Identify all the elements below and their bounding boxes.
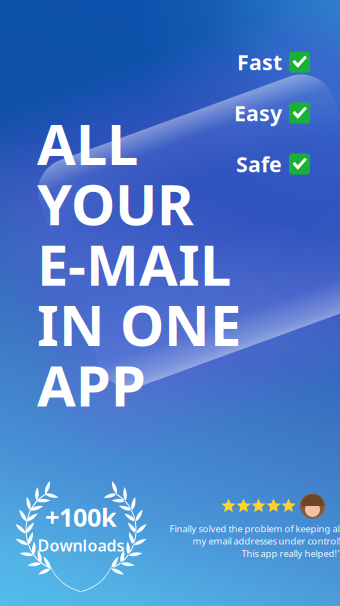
staticText: IN ONE	[37, 287, 241, 362]
staticText: APP	[37, 347, 146, 422]
staticText: E-MAIL	[37, 227, 231, 301]
staticText: Downloads	[37, 535, 124, 556]
staticText: +100k	[45, 500, 117, 534]
staticText: YOUR	[37, 166, 194, 241]
button[interactable]: Fast	[214, 36, 310, 87]
staticText: Safe	[236, 150, 282, 178]
button[interactable]: Safe	[214, 138, 310, 189]
staticText: Easy	[234, 99, 282, 127]
staticText: Finally solved the problem of keeping al…	[169, 522, 340, 560]
staticText: Fast	[237, 48, 282, 76]
staticText: ALL	[37, 106, 138, 180]
button[interactable]: Easy	[214, 87, 310, 138]
